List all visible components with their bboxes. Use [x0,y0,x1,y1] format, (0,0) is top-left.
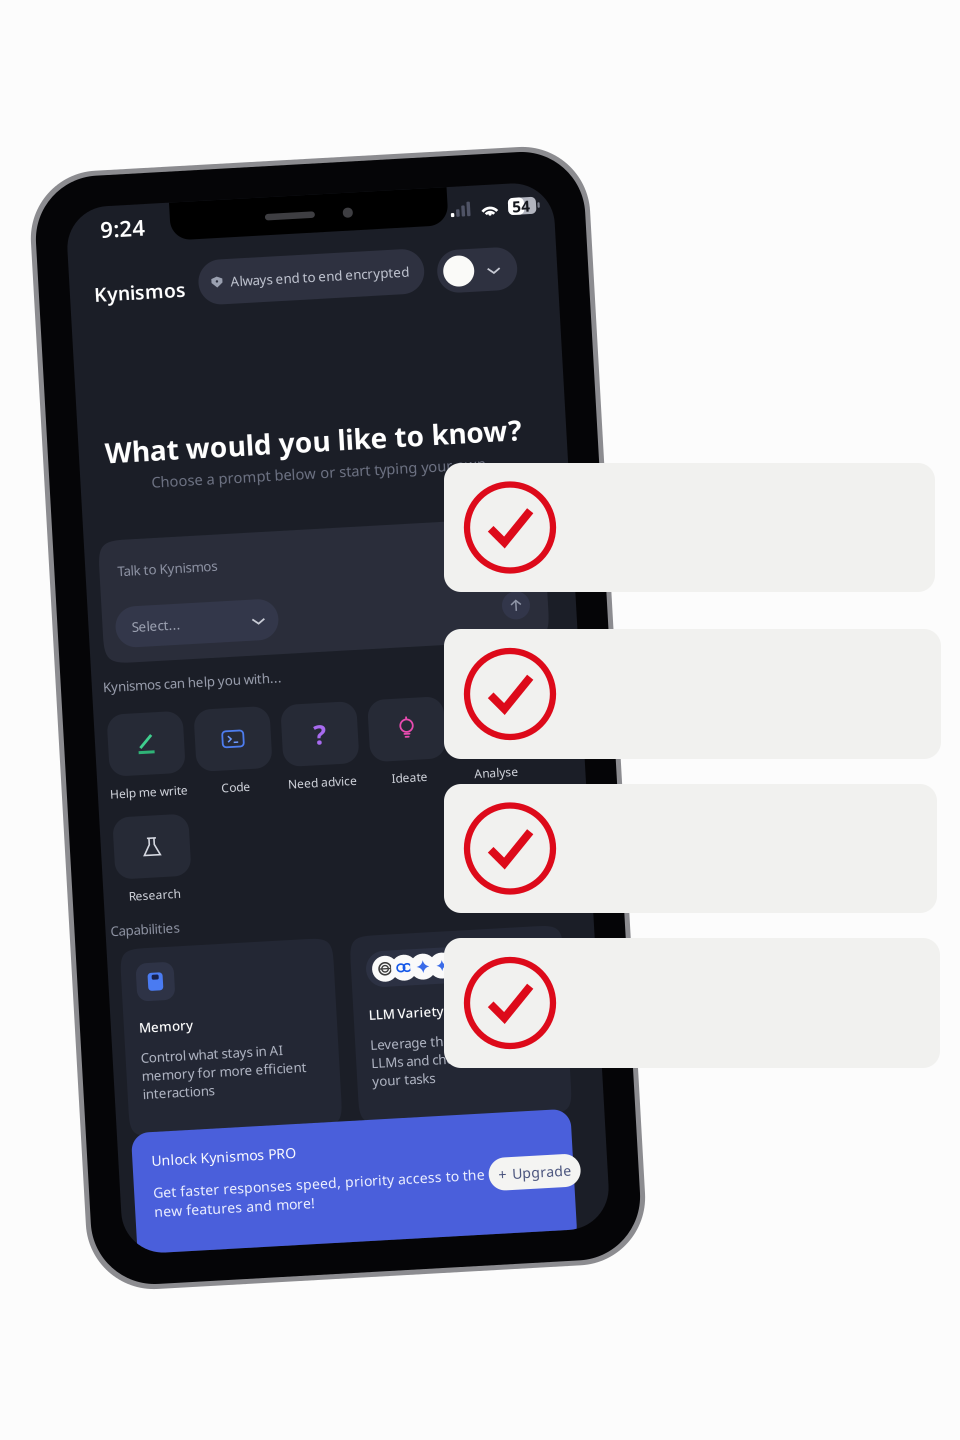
staticText: LLM Variety [352,1007,427,1025]
staticText: What would you like to know? [120,421,537,459]
button[interactable]: Analyse [455,702,531,789]
staticText: 9:24 [128,202,173,232]
button[interactable]: Completed [444,629,941,759]
staticText: Code [217,773,246,789]
staticText: Upgrade [486,1173,545,1192]
button[interactable]: ? [281,702,357,789]
button[interactable]: Always end to end encrypted [223,253,449,298]
staticText: + [472,1172,480,1192]
staticText: Unlock Kynismos PRO [127,1140,272,1159]
button[interactable]: Completed [444,784,937,913]
staticText: Leverage the best available LLMs and cho… [352,1037,533,1092]
staticText: Get faster responses speed, priority acc… [127,1172,459,1210]
staticText: Control what stays in AI memory for more… [122,1037,287,1092]
staticText: Choose a prompt below or start typing yo… [165,462,500,482]
staticText: Analyse [471,773,515,789]
staticText: Ideate [388,773,424,789]
staticText: Kynismos [118,268,210,295]
button[interactable]: Ideate [368,702,444,789]
staticText: Capabilities [99,909,168,927]
staticText: 54 [540,207,558,227]
button[interactable]: Completed [444,463,935,592]
staticText: Talk to Kynismos [126,550,226,568]
button[interactable]: Unlock Kynismos PRO [108,1121,548,1256]
staticText: Research [119,876,171,892]
button[interactable]: Send [508,601,536,629]
button[interactable]: Completed [444,938,940,1068]
staticText: Memory [122,1007,176,1025]
button[interactable]: LLM Variety [337,937,550,1125]
button[interactable]: Select... [121,595,284,636]
staticText: Need advice [284,773,353,789]
button[interactable]: Account [462,252,542,300]
staticText: Help me write [106,773,184,789]
staticText: Kynismos can help you with... [105,665,284,683]
button[interactable]: Memory [107,937,320,1125]
button[interactable]: Code [194,702,270,789]
staticText: Always end to end encrypted [255,267,434,285]
button[interactable]: Research [107,805,183,892]
staticText: ? [312,715,325,751]
staticText: Select... [137,606,186,625]
button[interactable]: Help me write [107,702,183,789]
